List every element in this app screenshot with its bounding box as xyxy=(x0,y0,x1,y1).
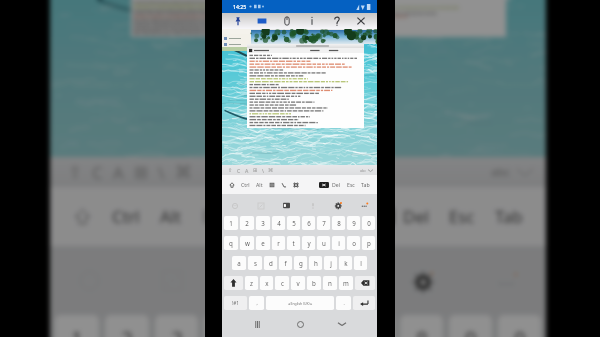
button[interactable]: Del xyxy=(403,205,429,228)
button[interactable]: Tab xyxy=(361,181,370,188)
staticText: Alt xyxy=(256,181,263,188)
button[interactable]: h xyxy=(309,256,322,270)
button[interactable]: Settings xyxy=(406,263,441,298)
button[interactable]: j xyxy=(324,256,337,270)
button[interactable]: Backspace xyxy=(355,276,375,290)
button[interactable]: u xyxy=(317,236,330,250)
button[interactable]: 2 xyxy=(240,216,254,230)
button[interactable]: More options xyxy=(359,200,370,211)
button[interactable]: Pin xyxy=(227,13,249,29)
button[interactable]: Voice input xyxy=(322,263,357,298)
button[interactable]: Help xyxy=(326,13,348,29)
button[interactable]: Esc xyxy=(449,205,475,228)
button[interactable]: Mouse xyxy=(276,13,298,29)
button[interactable]: Ctrl xyxy=(241,181,250,188)
button[interactable]: q xyxy=(224,236,238,250)
button[interactable]: Alt xyxy=(160,205,181,228)
button[interactable]: 1 xyxy=(55,315,99,337)
button[interactable]: Close xyxy=(350,13,372,29)
button[interactable]: c xyxy=(275,276,289,290)
button[interactable]: Info xyxy=(301,13,323,29)
button[interactable]: Voice input xyxy=(307,200,318,211)
button[interactable]: Del xyxy=(332,181,341,188)
button[interactable]: 3 xyxy=(256,216,270,230)
button[interactable]: Enter xyxy=(353,296,375,310)
button[interactable]: Emoji xyxy=(229,200,240,211)
button[interactable]: Recents xyxy=(249,316,265,332)
button[interactable]: Command xyxy=(293,182,299,188)
button[interactable]: Alt Gr xyxy=(281,182,287,188)
button[interactable]: 5 xyxy=(287,216,300,230)
button[interactable]: z xyxy=(245,276,258,290)
button[interactable]: t xyxy=(287,236,300,250)
button[interactable]: 7 xyxy=(317,216,330,230)
staticText: 3 xyxy=(171,325,183,337)
button[interactable]: x xyxy=(260,276,273,290)
button[interactable]: . xyxy=(336,296,351,310)
staticText: c xyxy=(281,279,284,287)
button[interactable]: Super xyxy=(201,207,220,226)
button[interactable]: Back xyxy=(334,316,350,332)
button[interactable]: 0 xyxy=(362,216,375,230)
button[interactable]: 7 xyxy=(351,315,394,337)
button[interactable]: d xyxy=(264,256,277,270)
button[interactable]: 8 xyxy=(332,216,345,230)
button[interactable]: Ctrl xyxy=(112,205,140,228)
button[interactable]: b xyxy=(307,276,321,290)
button[interactable]: f xyxy=(279,256,292,270)
button[interactable]: !#1 xyxy=(224,296,247,310)
staticText: A xyxy=(245,167,249,174)
button[interactable]: w xyxy=(240,236,254,250)
button[interactable]: e xyxy=(256,236,270,250)
button[interactable]: p xyxy=(362,236,375,250)
button[interactable]: 1 xyxy=(224,216,238,230)
button[interactable]: s xyxy=(248,256,262,270)
button[interactable]: y xyxy=(302,236,315,250)
button[interactable]: 4 xyxy=(272,216,285,230)
button[interactable]: Shift xyxy=(229,182,235,188)
button[interactable]: Shift xyxy=(73,207,92,226)
button[interactable]: n xyxy=(323,276,337,290)
button[interactable]: Super xyxy=(269,182,275,188)
button[interactable]: Handwriting xyxy=(255,200,266,211)
button[interactable]: 9 xyxy=(347,216,360,230)
button[interactable]: ◂ English (UK) ▸ xyxy=(266,296,334,310)
button[interactable]: i xyxy=(332,236,345,250)
button[interactable]: Clipboard xyxy=(281,200,292,211)
button[interactable]: 4 xyxy=(204,315,247,337)
button[interactable]: Alt Gr xyxy=(240,207,259,226)
button[interactable]: , xyxy=(249,296,264,310)
button[interactable]: v xyxy=(291,276,305,290)
button[interactable]: m xyxy=(339,276,353,290)
button[interactable]: 3 xyxy=(155,315,198,337)
button[interactable]: Settings xyxy=(333,200,344,211)
button[interactable]: 8 xyxy=(400,315,443,337)
button[interactable]: Keyboard xyxy=(251,13,273,29)
button[interactable]: Backspace xyxy=(361,207,393,226)
button[interactable]: g xyxy=(294,256,307,270)
button[interactable]: 5 xyxy=(253,315,296,337)
button[interactable]: a xyxy=(232,256,246,270)
button[interactable]: r xyxy=(272,236,285,250)
button[interactable]: o xyxy=(347,236,360,250)
button[interactable]: 6 xyxy=(302,315,345,337)
button[interactable]: 6 xyxy=(302,216,315,230)
button[interactable]: 0 xyxy=(498,315,541,337)
button[interactable]: l xyxy=(354,256,367,270)
button[interactable]: Shift xyxy=(224,276,243,290)
button[interactable]: Clipboard xyxy=(239,263,274,298)
button[interactable]: Tab xyxy=(495,205,523,228)
button[interactable]: Esc xyxy=(347,181,355,188)
button[interactable]: k xyxy=(339,256,352,270)
staticText: 0 xyxy=(367,219,371,227)
button[interactable]: Home xyxy=(292,316,308,332)
button[interactable]: 2 xyxy=(105,315,149,337)
button[interactable]: Alt xyxy=(256,181,263,188)
button[interactable]: Command xyxy=(279,207,298,226)
button[interactable]: 9 xyxy=(449,315,492,337)
button[interactable]: Backspace xyxy=(319,182,329,188)
staticText: 7 xyxy=(322,219,326,227)
